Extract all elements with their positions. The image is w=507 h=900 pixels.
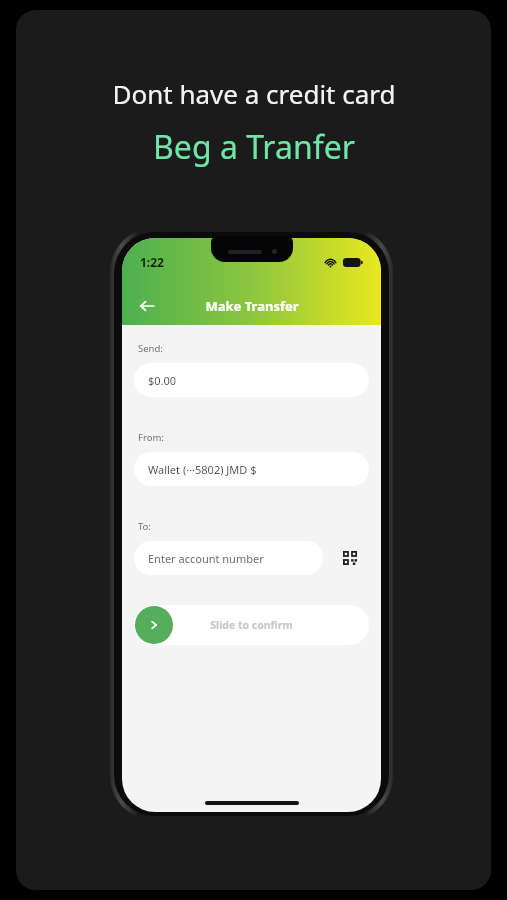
staticText: Dont have a credit card	[112, 76, 396, 111]
button[interactable]: Enter account number	[134, 541, 323, 575]
staticText: Send:	[138, 342, 163, 355]
staticText: From:	[138, 431, 164, 444]
button[interactable]: Back	[130, 289, 164, 323]
staticText: Slide to confirm	[210, 618, 293, 632]
button[interactable]: $0.00	[134, 363, 369, 397]
staticText: $0.00	[148, 373, 177, 388]
staticText: Enter account number	[148, 551, 264, 566]
staticText: Beg a Tranfer	[153, 125, 355, 169]
button[interactable]: Wallet (···5802) JMD $	[134, 452, 369, 486]
staticText: 1:22	[140, 254, 164, 270]
button[interactable]: Slide to confirm	[134, 605, 369, 645]
button[interactable]: Scan QR code	[337, 545, 363, 571]
staticText: Wallet (···5802) JMD $	[148, 462, 257, 477]
staticText: Make Transfer	[205, 297, 299, 315]
staticText: To:	[138, 520, 151, 533]
